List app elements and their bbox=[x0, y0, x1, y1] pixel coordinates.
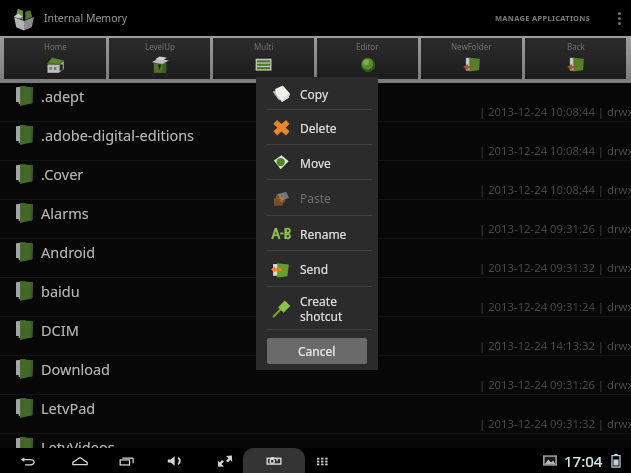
button[interactable]: Android bbox=[0, 239, 631, 278]
staticText: LetvVideos bbox=[41, 437, 115, 448]
button[interactable]: MANAGE APPLICATIONS bbox=[490, 4, 596, 32]
button[interactable]: LevelUp bbox=[109, 38, 210, 79]
button[interactable]: .adobe-digital-editions bbox=[0, 122, 631, 161]
button[interactable]: LetvVideos bbox=[0, 434, 631, 448]
button[interactable]: Move bbox=[256, 145, 378, 180]
staticText: MANAGE APPLICATIONS bbox=[495, 13, 591, 23]
button[interactable]: Alarms bbox=[0, 200, 631, 239]
staticText: Android bbox=[41, 242, 96, 262]
staticText: Editor bbox=[356, 41, 379, 52]
staticText: Home bbox=[44, 41, 67, 52]
button[interactable]: Send bbox=[256, 251, 378, 287]
button[interactable]: Create shotcut bbox=[256, 287, 378, 330]
button[interactable]: Rename bbox=[256, 216, 378, 251]
staticText: | 2013-12-24 09:31:32 | drwxrwx--- bbox=[479, 416, 631, 431]
button[interactable]: NewFolder bbox=[421, 38, 522, 79]
button[interactable]: DCIM bbox=[0, 317, 631, 356]
button[interactable]: baidu bbox=[0, 278, 631, 317]
staticText: Rename bbox=[300, 226, 347, 242]
staticText: | 2013-12-24 10:08:44 | drwxrwx--- bbox=[479, 104, 631, 119]
staticText: | 2013-12-24 09:31:24 | drwxrwx--- bbox=[479, 299, 631, 314]
staticText: | 2013-12-24 09:31:26 | drwxrwx--- bbox=[479, 221, 631, 236]
button[interactable]: Back bbox=[0, 448, 56, 473]
staticText: Internal Memory bbox=[44, 11, 128, 25]
staticText: LetvPad bbox=[41, 398, 96, 418]
staticText: Send bbox=[300, 261, 329, 277]
button[interactable]: Download bbox=[0, 356, 631, 395]
button[interactable]: Multi bbox=[213, 38, 314, 79]
staticText: DCIM bbox=[41, 320, 79, 340]
button[interactable]: Apps bbox=[298, 448, 345, 473]
button[interactable]: Editor bbox=[317, 38, 418, 79]
button[interactable]: Home bbox=[56, 448, 103, 473]
button[interactable]: Screenshot bbox=[249, 448, 298, 473]
staticText: NewFolder bbox=[451, 41, 492, 52]
staticText: Move bbox=[300, 155, 331, 171]
staticText: .Cover bbox=[41, 164, 84, 184]
button[interactable]: Home bbox=[4, 38, 106, 79]
staticText: | 2013-12-24 09:31:32 | drwxrwx--- bbox=[479, 260, 631, 275]
staticText: 17:04 bbox=[564, 451, 603, 471]
button[interactable]: .Cover bbox=[0, 161, 631, 200]
staticText: .adobe-digital-editions bbox=[41, 125, 195, 145]
button[interactable]: Copy bbox=[256, 77, 378, 110]
staticText: Download bbox=[41, 359, 110, 379]
button[interactable]: .adept bbox=[0, 83, 631, 122]
staticText: .adept bbox=[41, 86, 85, 106]
staticText: | 2013-12-24 10:08:44 | drwxrwx--- bbox=[479, 182, 631, 197]
button[interactable]: Delete bbox=[256, 110, 378, 145]
staticText: Multi bbox=[254, 41, 274, 52]
staticText: Cancel bbox=[298, 343, 336, 359]
staticText: Alarms bbox=[41, 203, 89, 223]
button[interactable]: Expand bbox=[200, 448, 249, 473]
button[interactable]: Paste bbox=[256, 180, 378, 216]
staticText: LevelUp bbox=[145, 41, 175, 52]
button[interactable]: Recents bbox=[103, 448, 150, 473]
button[interactable]: LetvPad bbox=[0, 395, 631, 434]
staticText: Delete bbox=[300, 120, 337, 136]
button[interactable]: Back bbox=[525, 38, 626, 79]
button[interactable]: More options bbox=[608, 0, 631, 36]
button[interactable]: Cancel bbox=[267, 338, 367, 364]
staticText: Copy bbox=[300, 86, 329, 102]
staticText: Back bbox=[567, 41, 585, 52]
staticText: baidu bbox=[41, 281, 80, 301]
staticText: Create shotcut bbox=[300, 293, 343, 324]
staticText: | 2013-12-24 09:31:26 | drwxrwx--- bbox=[479, 377, 631, 392]
button[interactable]: Volume bbox=[150, 448, 200, 473]
staticText: | 2013-12-24 14:13:32 | drwxrwx--- bbox=[479, 338, 631, 353]
staticText: Paste bbox=[300, 190, 331, 206]
staticText: | 2013-12-24 10:08:44 | drwxrwx--- bbox=[479, 143, 631, 158]
